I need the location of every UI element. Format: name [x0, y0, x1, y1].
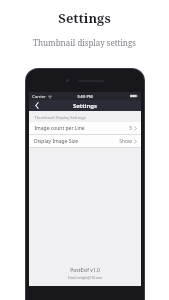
staticText: Settings	[73, 102, 97, 110]
staticText: 5:50 PM	[77, 94, 93, 99]
staticText: Settings	[58, 9, 111, 27]
staticText: PostExif v1.0	[70, 267, 100, 274]
staticText: Show	[119, 138, 132, 145]
staticText: Email: imlight@163.com	[68, 276, 102, 280]
staticText: Thumbnail Display Settings	[34, 115, 86, 120]
staticText: Thumbnail display settings	[33, 37, 136, 48]
staticText: Image count per Line	[34, 125, 85, 132]
staticText: Carrier	[32, 94, 46, 99]
staticText: Display Image Size	[34, 138, 78, 145]
button[interactable]: Display Image Size	[29, 135, 141, 147]
button[interactable]: Image count per Line	[29, 122, 141, 134]
button[interactable]: Back	[29, 100, 45, 111]
staticText: 3	[129, 125, 132, 132]
